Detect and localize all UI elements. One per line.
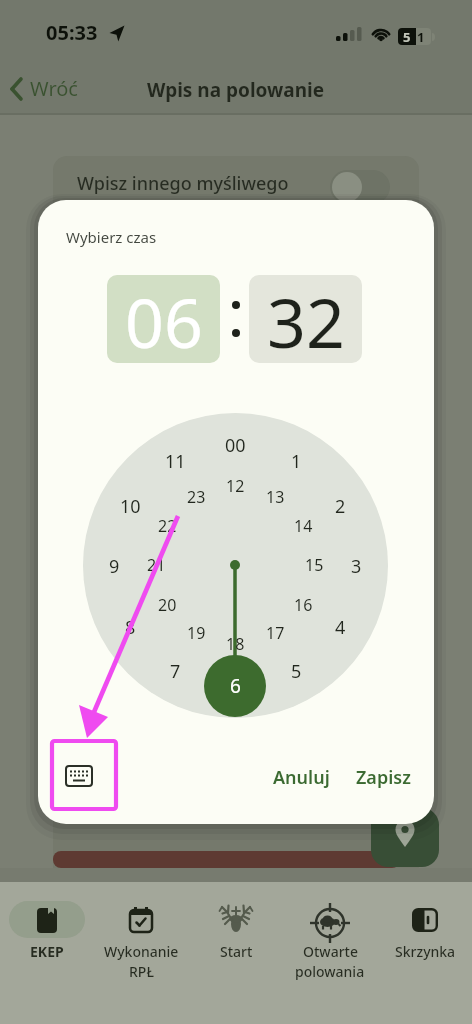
button[interactable] [283, 882, 377, 982]
staticText: 14 [294, 515, 313, 537]
staticText: Start [220, 942, 253, 960]
staticText: 5 [291, 659, 302, 681]
staticText: 20 [158, 594, 177, 616]
button[interactable]: 32 [249, 275, 362, 363]
button[interactable]: Wróć [30, 75, 100, 103]
staticText: 32 [267, 275, 345, 363]
staticText: 9 [109, 554, 120, 576]
staticText: 11 [165, 449, 186, 471]
staticText: 19 [187, 622, 206, 644]
button[interactable] [330, 170, 390, 204]
staticText: 13 [266, 486, 285, 508]
staticText: 10 [120, 494, 141, 516]
staticText: 4 [335, 615, 346, 637]
staticText: EKEP [30, 942, 64, 960]
staticText: Wykonanie [104, 942, 179, 960]
staticText: 8 [125, 615, 136, 637]
button[interactable]: 06 [107, 275, 220, 363]
staticText: Wróć [30, 75, 78, 102]
staticText: 21 [147, 554, 166, 576]
button[interactable] [94, 882, 188, 982]
button[interactable]: Anuluj [270, 760, 332, 794]
staticText: polowania [295, 962, 365, 980]
staticText: Wybierz czas [66, 227, 157, 247]
staticText: 1 [291, 449, 302, 471]
staticText: 06 [125, 275, 203, 363]
staticText: 3 [351, 554, 362, 576]
staticText: Skrzynka [395, 942, 456, 960]
staticText: Zapisz [356, 765, 411, 790]
staticText: Anuluj [273, 765, 330, 790]
button[interactable] [66, 766, 91, 786]
button[interactable]: Zapisz [350, 760, 416, 794]
staticText: 15 [305, 554, 324, 576]
staticText: Wpisz innego myśliwego [77, 171, 289, 196]
staticText: 22 [158, 515, 177, 537]
staticText: Wpis na polowanie [147, 77, 325, 103]
staticText: 23 [187, 486, 206, 508]
button[interactable] [378, 882, 472, 982]
button[interactable] [371, 808, 439, 867]
staticText: 7 [170, 659, 181, 681]
button[interactable] [189, 882, 283, 982]
staticText: 16 [294, 594, 313, 616]
button[interactable] [0, 882, 94, 982]
staticText: Otwarte [303, 942, 358, 960]
staticText: 00 [225, 433, 246, 455]
staticText: RPŁ [129, 962, 154, 980]
staticText: 18 [226, 633, 245, 655]
staticText: 17 [266, 622, 285, 644]
staticText: 6 [230, 673, 241, 699]
staticText: 12 [226, 475, 245, 497]
staticText: 5 [403, 28, 411, 45]
staticText: 05:33 [46, 19, 98, 46]
staticText: 1 [417, 28, 425, 45]
staticText: 2 [335, 494, 346, 516]
